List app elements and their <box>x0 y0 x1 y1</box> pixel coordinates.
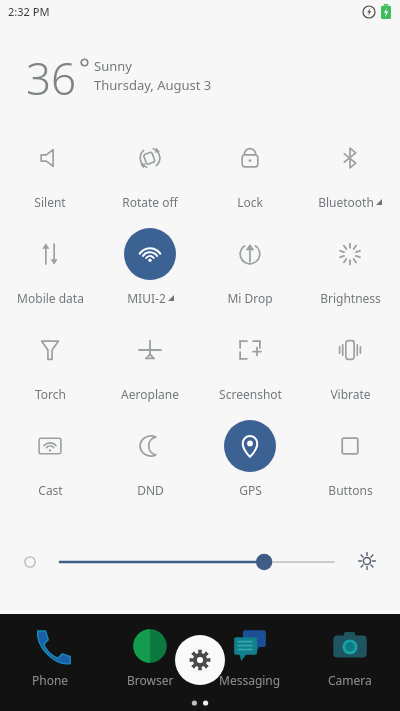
staticText: Brightness <box>320 290 381 306</box>
button[interactable]: Messaging <box>200 614 300 688</box>
staticText: Vibrate <box>330 386 371 402</box>
staticText: MIUI-2 <box>127 290 166 306</box>
staticText: 2:32 PM <box>8 4 50 19</box>
button[interactable]: Rotate off <box>100 126 200 222</box>
button[interactable]: Browser <box>100 614 200 688</box>
staticText: Bluetooth <box>318 194 374 210</box>
staticText: 36 <box>26 48 77 108</box>
button[interactable]: Cast <box>0 414 100 510</box>
button[interactable]: MIUI-2 <box>100 222 200 318</box>
button[interactable]: Brightness <box>300 222 400 318</box>
button[interactable]: Vibrate <box>300 318 400 414</box>
button[interactable]: Bluetooth <box>300 126 400 222</box>
button[interactable]: GPS <box>200 414 300 510</box>
button[interactable]: Mi Drop <box>200 222 300 318</box>
staticText: Screenshot <box>219 386 282 402</box>
button[interactable]: Screenshot <box>200 318 300 414</box>
button[interactable]: DND <box>100 414 200 510</box>
button[interactable]: Settings <box>175 635 225 685</box>
staticText: Sunny <box>94 57 132 75</box>
button[interactable]: Auto brightness off <box>22 554 38 570</box>
staticText: Mobile data <box>17 290 84 306</box>
button[interactable]: Aeroplane <box>100 318 200 414</box>
staticText: Messaging <box>219 672 281 688</box>
staticText: DND <box>137 482 164 498</box>
button[interactable]: Camera <box>300 614 400 688</box>
staticText: Thursday, August 3 <box>94 76 212 94</box>
button[interactable]: Mobile data <box>0 222 100 318</box>
staticText: GPS <box>239 482 262 498</box>
button[interactable]: Brightness slider <box>52 546 342 578</box>
staticText: Lock <box>237 194 263 210</box>
staticText: Mi Drop <box>227 290 273 306</box>
staticText: Browser <box>127 672 174 688</box>
staticText: Camera <box>328 672 372 688</box>
button[interactable]: Buttons <box>300 414 400 510</box>
button[interactable]: Lock <box>200 126 300 222</box>
staticText: Aeroplane <box>121 386 179 402</box>
staticText: Torch <box>35 386 66 402</box>
button[interactable]: Silent <box>0 126 100 222</box>
staticText: Silent <box>34 194 66 210</box>
staticText: Cast <box>38 482 63 498</box>
button[interactable]: Torch <box>0 318 100 414</box>
staticText: Buttons <box>328 482 373 498</box>
staticText: Rotate off <box>122 194 178 210</box>
button[interactable]: Brightness settings <box>357 551 377 571</box>
staticText: Phone <box>32 672 69 688</box>
button[interactable]: Phone <box>0 614 100 688</box>
